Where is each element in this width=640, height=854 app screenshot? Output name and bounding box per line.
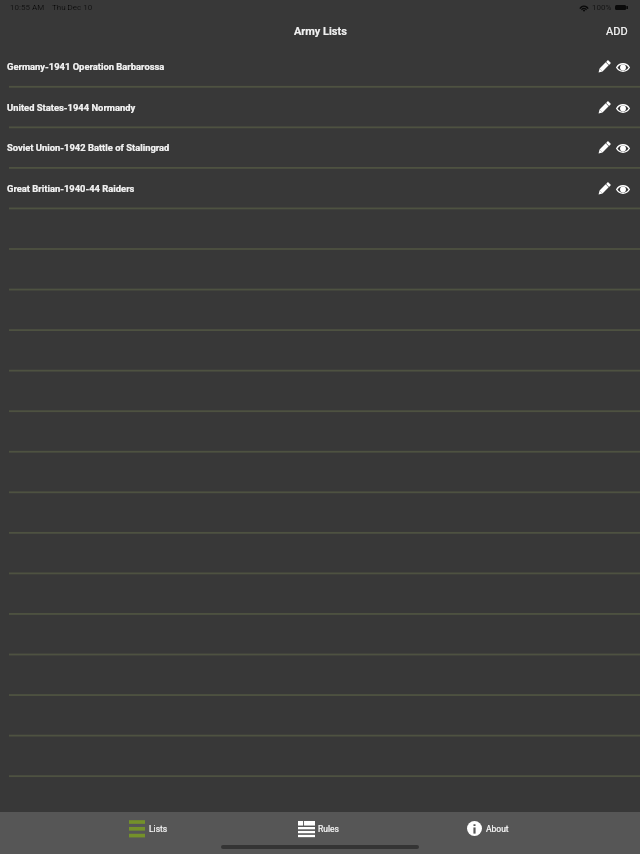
staticText: Soviet Union-1942 Battle of Stalingrad bbox=[7, 142, 170, 153]
staticText: ADD bbox=[606, 25, 628, 38]
button[interactable]: View bbox=[614, 58, 632, 76]
staticText: 10:55 AM bbox=[10, 3, 45, 12]
button[interactable]: ADD bbox=[594, 19, 640, 44]
button[interactable]: View bbox=[614, 180, 632, 198]
button[interactable]: Edit bbox=[595, 58, 613, 76]
staticText: United States-1944 Normandy bbox=[7, 102, 136, 113]
staticText: Germany-1941 Operation Barbarossa bbox=[7, 61, 165, 72]
staticText: Great Britian-1940-44 Raiders bbox=[7, 183, 135, 194]
staticText: Thu Dec 10 bbox=[52, 3, 93, 12]
staticText: Lists bbox=[149, 824, 168, 834]
button[interactable]: Edit bbox=[595, 180, 613, 198]
button[interactable]: Soviet Union-1942 Battle of Stalingrad bbox=[0, 127, 640, 168]
staticText: Army Lists bbox=[294, 25, 347, 38]
button[interactable]: Rules bbox=[233, 812, 403, 845]
staticText: Rules bbox=[318, 824, 339, 834]
staticText: About bbox=[486, 824, 509, 834]
button[interactable]: Germany-1941 Operation Barbarossa bbox=[0, 46, 640, 87]
button[interactable]: Edit bbox=[595, 139, 613, 157]
button[interactable]: View bbox=[614, 99, 632, 117]
button[interactable]: View bbox=[614, 139, 632, 157]
button[interactable]: Lists bbox=[63, 812, 233, 845]
button[interactable]: About bbox=[403, 812, 573, 845]
button[interactable]: Great Britian-1940-44 Raiders bbox=[0, 168, 640, 209]
button[interactable]: Edit bbox=[595, 99, 613, 117]
button[interactable]: United States-1944 Normandy bbox=[0, 87, 640, 128]
staticText: 100% bbox=[592, 3, 612, 12]
